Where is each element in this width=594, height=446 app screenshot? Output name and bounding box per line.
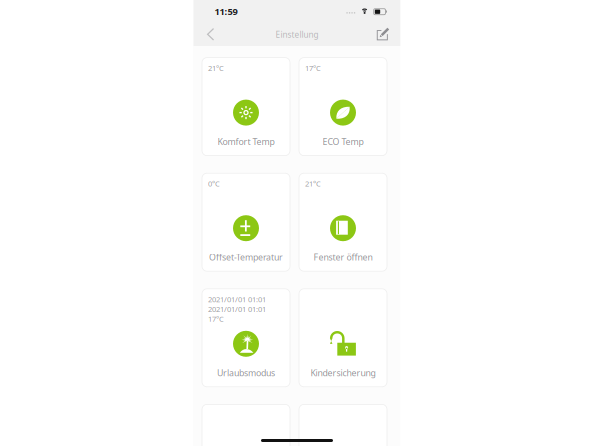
staticText: 17°C	[208, 314, 224, 324]
staticText: Urlaubsmodus	[217, 367, 275, 379]
staticText: 21°C	[305, 179, 321, 189]
button[interactable]: Komfort Temp	[202, 58, 290, 156]
staticText: 0°C	[208, 179, 220, 189]
staticText: 2021/01/01 01:01	[208, 294, 266, 304]
button[interactable]: Urlaubsmodus	[202, 289, 290, 387]
staticText: Kindersicherung	[310, 367, 375, 379]
button[interactable]: Offset-Temperatur	[202, 173, 290, 271]
staticText: 21°C	[208, 63, 224, 73]
button[interactable]: Fenster öffnen	[299, 173, 387, 271]
button[interactable]: Back	[199, 23, 221, 45]
staticText: Fenster öffnen	[313, 251, 372, 263]
staticText: 2021/01/01 01:01	[208, 304, 266, 314]
staticText: Komfort Temp	[217, 136, 274, 148]
staticText: 11:59	[214, 5, 237, 18]
staticText: 17°C	[305, 63, 321, 73]
button[interactable]: Kindersicherung	[299, 289, 387, 387]
button[interactable]: ECO Temp	[299, 58, 387, 156]
button[interactable]: Edit	[371, 23, 394, 45]
staticText: Offset-Temperatur	[209, 251, 283, 263]
staticText: ECO Temp	[322, 136, 363, 148]
staticText: Einstellung	[275, 29, 318, 40]
